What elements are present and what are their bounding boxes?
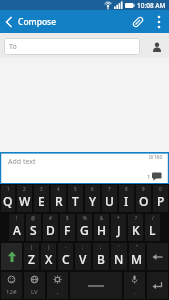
staticText: / [152,215,154,221]
staticText: ! [16,215,18,221]
button[interactable] [70,272,122,299]
staticText: % [83,215,87,221]
button[interactable]: 7 [102,185,117,212]
button[interactable]: ) [41,243,56,270]
button[interactable]: 12# [1,272,22,299]
staticText: " [136,244,138,250]
staticText: 5 [74,186,77,192]
button[interactable]: ? [128,214,143,241]
staticText: N [114,251,124,267]
staticText: 8 [125,186,128,192]
button[interactable]: - [58,243,73,270]
staticText: Compose [18,16,57,28]
staticText: K [132,222,140,238]
button[interactable]: ! [9,214,24,241]
staticText: 0 [159,186,162,192]
staticText: B [97,251,105,267]
button[interactable]: @ [26,214,41,241]
button[interactable]: $ [60,214,75,241]
staticText: 12# [6,288,17,296]
staticText: , [57,288,59,296]
button[interactable] [147,243,168,270]
staticText: G [80,222,89,238]
staticText: 2 [23,186,26,192]
button[interactable]: " [129,243,145,270]
staticText: S [30,222,37,238]
button[interactable]: 0 [153,185,168,212]
button[interactable]: / [145,214,160,241]
staticText: X [45,251,53,267]
staticText: P [157,193,165,209]
button[interactable]: . [124,272,145,299]
staticText: R [55,193,63,209]
button[interactable]: ' [111,243,127,270]
staticText: 0/160 [149,154,163,161]
staticText: M [131,251,143,267]
staticText: 10:08 AM [137,1,166,10]
button[interactable] [147,272,168,299]
staticText: ? [135,215,137,221]
button[interactable]: : [75,243,91,270]
staticText: 7 [108,186,111,192]
button[interactable]: 2 [17,185,32,212]
button[interactable]: 3 [34,185,49,212]
button[interactable]: ; [93,243,109,270]
staticText: F [64,222,71,238]
button[interactable]: Add text [0,152,169,184]
staticText: * [117,215,120,221]
button[interactable]: LV [24,272,45,299]
staticText: 9 [142,186,145,192]
staticText: Q [3,193,13,209]
button[interactable]: 6 [85,185,100,212]
button[interactable]: , [47,272,68,299]
staticText: Y [89,193,97,209]
staticText: To [9,42,17,52]
staticText: W [19,193,31,209]
button[interactable]: 5 [68,185,83,212]
staticText: A [13,222,21,238]
staticText: D [46,222,55,238]
staticText: & [100,215,104,221]
button[interactable]: & [94,214,109,241]
staticText: $ [66,215,69,221]
staticText: ) [48,244,50,250]
button[interactable] [149,10,169,33]
staticText: LV [31,288,38,296]
staticText: I [124,193,129,209]
staticText: H [97,222,106,238]
staticText: 6 [91,186,94,192]
button[interactable]: To [4,38,140,55]
staticText: 1 [147,173,151,181]
button[interactable]: 1 [1,185,15,212]
staticText: ' [118,244,120,250]
staticText: Z [28,251,35,267]
staticText: 1 [7,186,10,192]
button[interactable] [0,10,18,33]
staticText: @ [31,215,36,221]
staticText: L [149,222,156,238]
button[interactable]: * [111,214,126,241]
staticText: 4 [57,186,60,192]
staticText: V [79,251,87,267]
staticText: ( [31,244,33,250]
button[interactable]: ( [24,243,39,270]
staticText: T [72,193,79,209]
staticText: E [38,193,45,209]
staticText: C [62,251,70,267]
staticText: U [105,193,114,209]
staticText: # [49,215,52,221]
button[interactable]: % [77,214,92,241]
button[interactable]: 9 [136,185,151,212]
button[interactable] [1,243,22,270]
button[interactable] [127,10,149,33]
staticText: O [139,193,149,209]
staticText: J [117,222,121,238]
staticText: Add text [8,157,36,167]
staticText: . [134,288,136,296]
button[interactable]: # [43,214,58,241]
button[interactable]: 8 [119,185,134,212]
button[interactable] [145,34,169,58]
staticText: : [82,244,84,250]
staticText: - [65,244,67,250]
button[interactable]: 4 [51,185,66,212]
